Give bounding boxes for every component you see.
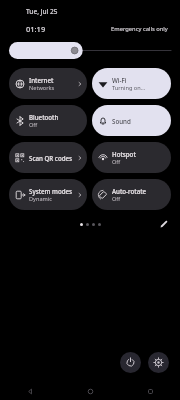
button[interactable]: Sound	[92, 105, 171, 136]
button[interactable]: Hotspot	[92, 142, 171, 173]
staticText: Internet	[29, 76, 54, 84]
staticText: Scan QR codes	[29, 154, 73, 162]
button[interactable]: Wi-Fi	[92, 68, 171, 99]
staticText: Wi-Fi	[112, 76, 127, 84]
staticText: Dynamic	[29, 195, 52, 203]
staticText: Off	[29, 121, 38, 129]
button[interactable]: Back	[0, 383, 60, 400]
button[interactable]: Internet	[9, 68, 87, 99]
button[interactable]: Auto-rotate	[92, 179, 171, 210]
staticText: System modes	[29, 187, 73, 195]
staticText: Off	[112, 195, 121, 203]
staticText: Hotspot	[112, 150, 136, 158]
staticText: Tue, Jul 25	[26, 7, 58, 16]
button[interactable]: Recents	[120, 383, 180, 400]
button[interactable]: Settings	[148, 352, 169, 373]
staticText: Networks unavailable	[29, 84, 77, 92]
button[interactable]: Edit tiles	[156, 217, 171, 231]
staticText: Turning on…	[112, 84, 146, 92]
staticText: Bluetooth	[29, 113, 59, 121]
button[interactable]: Brightness	[9, 42, 171, 59]
button[interactable]: Bluetooth	[9, 105, 87, 136]
button[interactable]: Home	[60, 383, 120, 400]
staticText: Auto-rotate	[112, 187, 147, 195]
staticText: Emergency calls only	[111, 25, 168, 33]
staticText: 01:19	[26, 24, 46, 34]
button[interactable]: Power	[120, 352, 141, 373]
button[interactable]: Scan QR codes	[9, 142, 87, 173]
staticText: Off	[112, 158, 121, 166]
staticText: Sound	[112, 117, 131, 125]
button[interactable]: System modes	[9, 179, 87, 210]
